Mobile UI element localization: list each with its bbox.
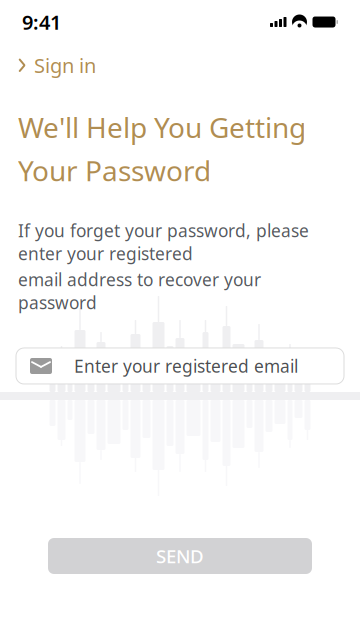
staticText: email address to recover your password: [18, 268, 261, 314]
button[interactable]: Enter your registered email: [16, 348, 344, 384]
staticText: Sign in: [34, 52, 96, 79]
button[interactable]: SEND: [48, 538, 312, 574]
staticText: If you forget your password, please ente…: [18, 219, 309, 265]
button[interactable]: Sign in: [0, 44, 112, 87]
staticText: SEND: [156, 544, 204, 568]
staticText: We'll Help You Getting: [18, 109, 306, 146]
staticText: Your Password: [18, 152, 211, 189]
staticText: Enter your registered email: [74, 354, 298, 377]
staticText: 9:41: [22, 9, 61, 35]
